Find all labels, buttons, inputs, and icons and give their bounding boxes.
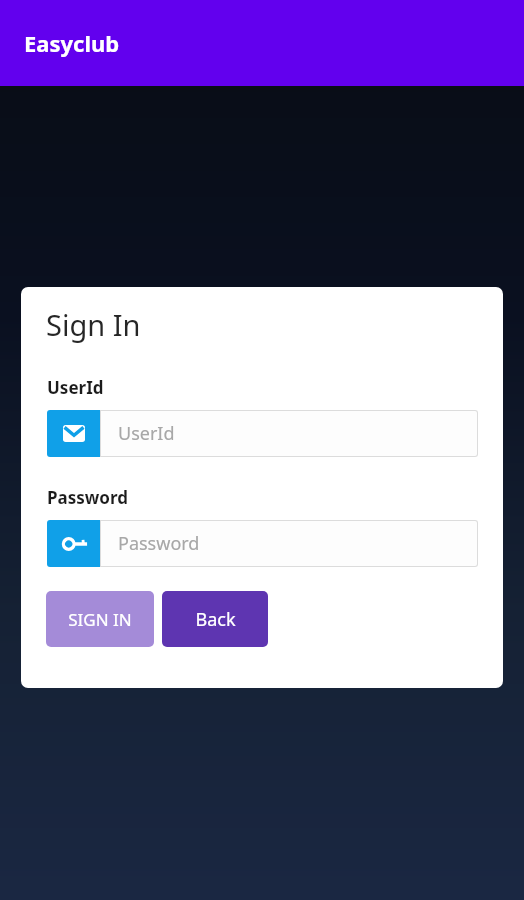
button[interactable]: Password	[47, 520, 478, 567]
staticText: Back	[195, 607, 236, 632]
button[interactable]: SIGN IN	[46, 591, 154, 647]
staticText: Password	[47, 486, 128, 509]
staticText: Easyclub	[24, 28, 120, 58]
staticText: UserId	[47, 376, 104, 399]
other: Password	[47, 520, 100, 567]
staticText: Password	[118, 531, 200, 556]
button[interactable]: Back	[162, 591, 268, 647]
staticText: SIGN IN	[68, 608, 132, 631]
button[interactable]: User id	[47, 410, 478, 457]
other: User id	[47, 410, 100, 457]
staticText: UserId	[118, 421, 175, 446]
staticText: Sign In	[46, 305, 141, 344]
